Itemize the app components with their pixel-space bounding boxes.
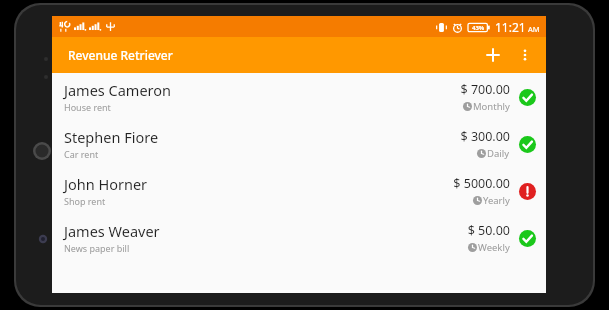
staticText: $ 700.00 [460, 81, 510, 98]
staticText: News paper bill [64, 242, 130, 254]
staticText: Shop rent [64, 195, 106, 207]
staticText: Monthly [473, 100, 510, 113]
button[interactable]: Stephen Fiore [52, 120, 546, 167]
staticText: 11:21 [495, 19, 526, 35]
staticText: Daily [487, 147, 510, 160]
staticText: Weekly [478, 241, 510, 254]
staticText: $ 5000.00 [453, 175, 510, 192]
staticText: $ 50.00 [467, 222, 510, 239]
button[interactable]: James Weaver [52, 214, 546, 261]
staticText: John Horner [64, 174, 148, 194]
staticText: Stephen Fiore [64, 127, 159, 147]
staticText: House rent [64, 101, 111, 113]
staticText: AM [528, 24, 540, 34]
button[interactable]: More options [510, 40, 540, 70]
staticText: Car rent [64, 148, 99, 160]
staticText: Yearly [483, 194, 510, 207]
button[interactable]: Add [476, 38, 510, 72]
button[interactable]: James Cameron [52, 73, 546, 120]
staticText: $ 300.00 [460, 128, 510, 145]
button[interactable]: John Horner [52, 167, 546, 214]
staticText: Revenue Retriever [68, 47, 173, 63]
staticText: James Weaver [64, 221, 160, 241]
staticText: James Cameron [64, 80, 172, 100]
staticText: 43% [472, 24, 485, 32]
